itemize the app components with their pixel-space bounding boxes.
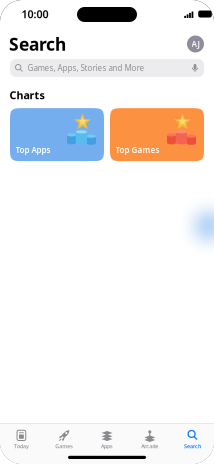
staticText: Arcade xyxy=(141,443,158,450)
staticText: 10:00 xyxy=(21,7,48,21)
button[interactable]: Search xyxy=(171,426,214,452)
staticText: Games xyxy=(55,443,73,450)
button[interactable]: Top Games xyxy=(110,108,204,161)
button[interactable]: Today xyxy=(0,426,43,452)
staticText: Today xyxy=(14,443,29,450)
staticText: Apps xyxy=(101,443,113,450)
button[interactable]: Arcade xyxy=(128,426,171,452)
staticText: Top Games xyxy=(115,144,159,155)
button[interactable]: Account xyxy=(187,35,204,52)
staticText: Top Apps xyxy=(15,144,50,155)
button[interactable]: Top Apps xyxy=(10,108,104,161)
staticText: Search xyxy=(184,443,201,450)
staticText: Games, Apps, Stories and More xyxy=(27,63,144,73)
staticText: Search xyxy=(9,32,66,55)
staticText: Charts xyxy=(9,88,44,102)
staticText: AJ xyxy=(191,39,199,49)
button[interactable]: Games xyxy=(43,426,86,452)
button[interactable]: Games, Apps, Stories and More xyxy=(10,59,204,77)
button[interactable]: Apps xyxy=(86,426,128,452)
